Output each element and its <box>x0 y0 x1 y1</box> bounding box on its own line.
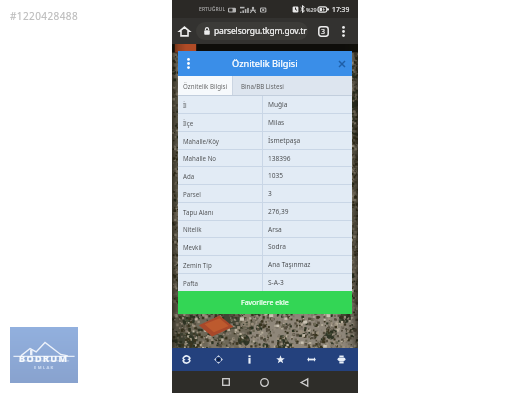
staticText: Pafta <box>183 279 199 287</box>
staticText: S-A-3 <box>268 278 284 287</box>
button[interactable]: More options <box>335 18 352 44</box>
button[interactable]: Print <box>328 348 354 371</box>
staticText: 276,39 <box>268 207 289 216</box>
staticText: İlçe <box>183 119 194 127</box>
staticText: Milas <box>268 118 285 127</box>
button[interactable]: Info <box>236 348 262 371</box>
button[interactable]: Refresh <box>173 348 199 371</box>
staticText: BODRUM <box>19 352 69 364</box>
staticText: 138396 <box>268 154 291 163</box>
button[interactable]: Menu <box>178 51 199 76</box>
staticText: Mevkii <box>183 243 202 251</box>
staticText: #1220428488 <box>10 9 79 23</box>
staticText: Tapu Alanı <box>183 208 214 216</box>
staticText: Nitelik <box>183 225 202 233</box>
staticText: Sodra <box>268 242 286 251</box>
button[interactable]: parselsorgu.tkgm.gov.tr <box>196 22 308 40</box>
button[interactable]: Recent apps <box>212 371 239 393</box>
staticText: İsmetpaşa <box>268 136 301 145</box>
button[interactable]: Home <box>251 371 278 393</box>
button[interactable]: Back <box>291 371 318 393</box>
staticText: Öznitelik Bilgisi <box>183 82 228 90</box>
staticText: Zemin Tip <box>183 261 212 269</box>
staticText: Favorilere ekle <box>241 298 289 308</box>
button[interactable]: Close <box>332 51 352 76</box>
staticText: 3 <box>321 27 326 37</box>
staticText: Mahalle/Köy <box>183 137 219 145</box>
staticText: Ana Taşınmaz <box>268 260 311 269</box>
button[interactable]: Measure <box>298 348 324 371</box>
staticText: Arsa <box>268 225 282 234</box>
staticText: parselsorgu.tkgm.gov.tr <box>214 25 307 37</box>
staticText: %29 <box>306 6 317 13</box>
staticText: Ada <box>183 172 195 180</box>
staticText: 17:39 <box>332 5 350 14</box>
button[interactable]: Tabs <box>314 18 333 44</box>
button[interactable]: Add to favourites <box>267 348 293 371</box>
button[interactable]: Öznitelik Bilgisi <box>178 76 232 95</box>
staticText: 1035 <box>268 171 284 180</box>
staticText: Mahalle No <box>183 154 217 162</box>
staticText: Bina/BB Listesi <box>241 82 284 90</box>
staticText: 3 <box>268 189 272 198</box>
button[interactable]: Locate me <box>205 348 231 371</box>
staticText: Muğla <box>268 100 288 109</box>
button[interactable]: Favorilere ekle <box>178 291 352 314</box>
button[interactable]: Bina/BB Listesi <box>233 76 291 95</box>
button[interactable]: Home <box>174 18 194 44</box>
staticText: İl <box>183 101 187 109</box>
staticText: EMLAK <box>34 365 55 370</box>
staticText: Parsel <box>183 190 201 198</box>
staticText: Öznitelik Bilgisi <box>232 57 298 70</box>
staticText: ERTUĞRUL <box>199 6 226 13</box>
